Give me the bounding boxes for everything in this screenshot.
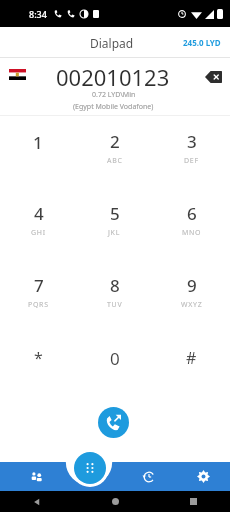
staticText: 2 [110, 130, 120, 153]
staticText: 4 [34, 202, 44, 225]
button[interactable]: History [122, 462, 176, 491]
staticText: 002010123 [56, 62, 170, 92]
staticText: GHI [31, 228, 46, 238]
staticText: 8:34 [29, 8, 47, 20]
button[interactable]: 7 [0, 260, 76, 332]
staticText: DEF [184, 156, 199, 166]
staticText: 6 [187, 202, 197, 225]
staticText: JKL [108, 228, 121, 238]
button[interactable]: 3 [153, 116, 230, 188]
staticText: PQRS [28, 300, 49, 310]
button[interactable]: Dialpad [74, 452, 106, 484]
button[interactable]: 9 [153, 260, 230, 332]
staticText: WXYZ [181, 300, 203, 310]
button[interactable]: 0 [76, 332, 153, 404]
button[interactable]: Contacts [0, 462, 72, 491]
button[interactable]: 5 [76, 188, 153, 260]
staticText: 3 [187, 130, 197, 153]
button[interactable]: 245.0 LYD [174, 30, 230, 55]
button[interactable]: 8 [76, 260, 153, 332]
staticText: (Egypt Mobile Vodafone) [73, 102, 154, 112]
button[interactable]: 1 [0, 116, 76, 188]
staticText: 0 [110, 347, 120, 370]
button[interactable]: Backspace [199, 63, 227, 91]
staticText: 9 [187, 274, 197, 297]
staticText: 0.72 LYD\Min [92, 90, 136, 100]
staticText: 5 [110, 202, 120, 225]
staticText: 7 [34, 274, 44, 297]
button[interactable]: 4 [0, 188, 76, 260]
button[interactable]: Settings [176, 462, 230, 491]
button[interactable]: Call [98, 407, 129, 438]
button[interactable]: # [153, 332, 230, 404]
staticText: # [186, 347, 197, 369]
button[interactable]: 2 [76, 116, 153, 188]
staticText: 1 [33, 131, 43, 154]
button[interactable]: * [0, 332, 76, 404]
staticText: MNO [182, 228, 202, 238]
staticText: * [34, 347, 43, 369]
staticText: 8 [110, 274, 120, 297]
button[interactable]: 6 [153, 188, 230, 260]
staticText: 245.0 LYD [183, 37, 221, 48]
staticText: ABC [107, 156, 123, 166]
staticText: Dialpad [90, 35, 134, 51]
staticText: TUV [107, 300, 123, 310]
